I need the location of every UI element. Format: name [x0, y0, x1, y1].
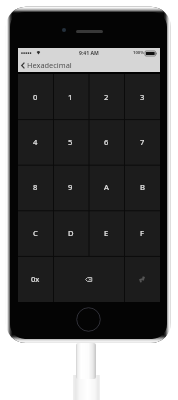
button[interactable]: Hexadecimal: [18, 60, 75, 70]
button[interactable]: 4: [18, 119, 53, 164]
staticText: Hexadecimal: [27, 60, 72, 70]
button[interactable]: Delete: [53, 256, 124, 302]
staticText: C: [33, 228, 38, 238]
staticText: 6: [104, 137, 109, 147]
button[interactable]: 0: [18, 74, 53, 119]
button[interactable]: Home: [76, 307, 101, 332]
staticText: 4: [33, 137, 38, 147]
button[interactable]: Hide keyboard: [124, 256, 160, 302]
staticText: A: [104, 182, 109, 192]
staticText: 1: [68, 92, 73, 102]
button[interactable]: E: [88, 210, 124, 256]
staticText: 0: [33, 92, 38, 102]
button[interactable]: 7: [124, 119, 160, 164]
staticText: F: [140, 228, 144, 238]
staticText: E: [104, 228, 109, 238]
staticText: 3: [140, 92, 145, 102]
button[interactable]: 8: [18, 164, 53, 210]
button[interactable]: 5: [53, 119, 88, 164]
staticText: 9:41 AM: [79, 50, 99, 57]
button[interactable]: B: [124, 164, 160, 210]
staticText: 5: [68, 137, 73, 147]
staticText: 9: [68, 182, 73, 192]
button[interactable]: F: [124, 210, 160, 256]
button[interactable]: 3: [124, 74, 160, 119]
staticText: 0x: [31, 274, 40, 284]
button[interactable]: 2: [88, 74, 124, 119]
button[interactable]: 9: [53, 164, 88, 210]
button[interactable]: 1: [53, 74, 88, 119]
button[interactable]: 0x: [18, 256, 53, 302]
button[interactable]: 6: [88, 119, 124, 164]
staticText: D: [68, 228, 74, 238]
staticText: 2: [104, 92, 109, 102]
button[interactable]: A: [88, 164, 124, 210]
button[interactable]: C: [18, 210, 53, 256]
staticText: 8: [33, 182, 38, 192]
button[interactable]: D: [53, 210, 88, 256]
staticText: B: [140, 182, 145, 192]
staticText: 7: [140, 137, 145, 147]
staticText: 100%: [133, 50, 144, 56]
